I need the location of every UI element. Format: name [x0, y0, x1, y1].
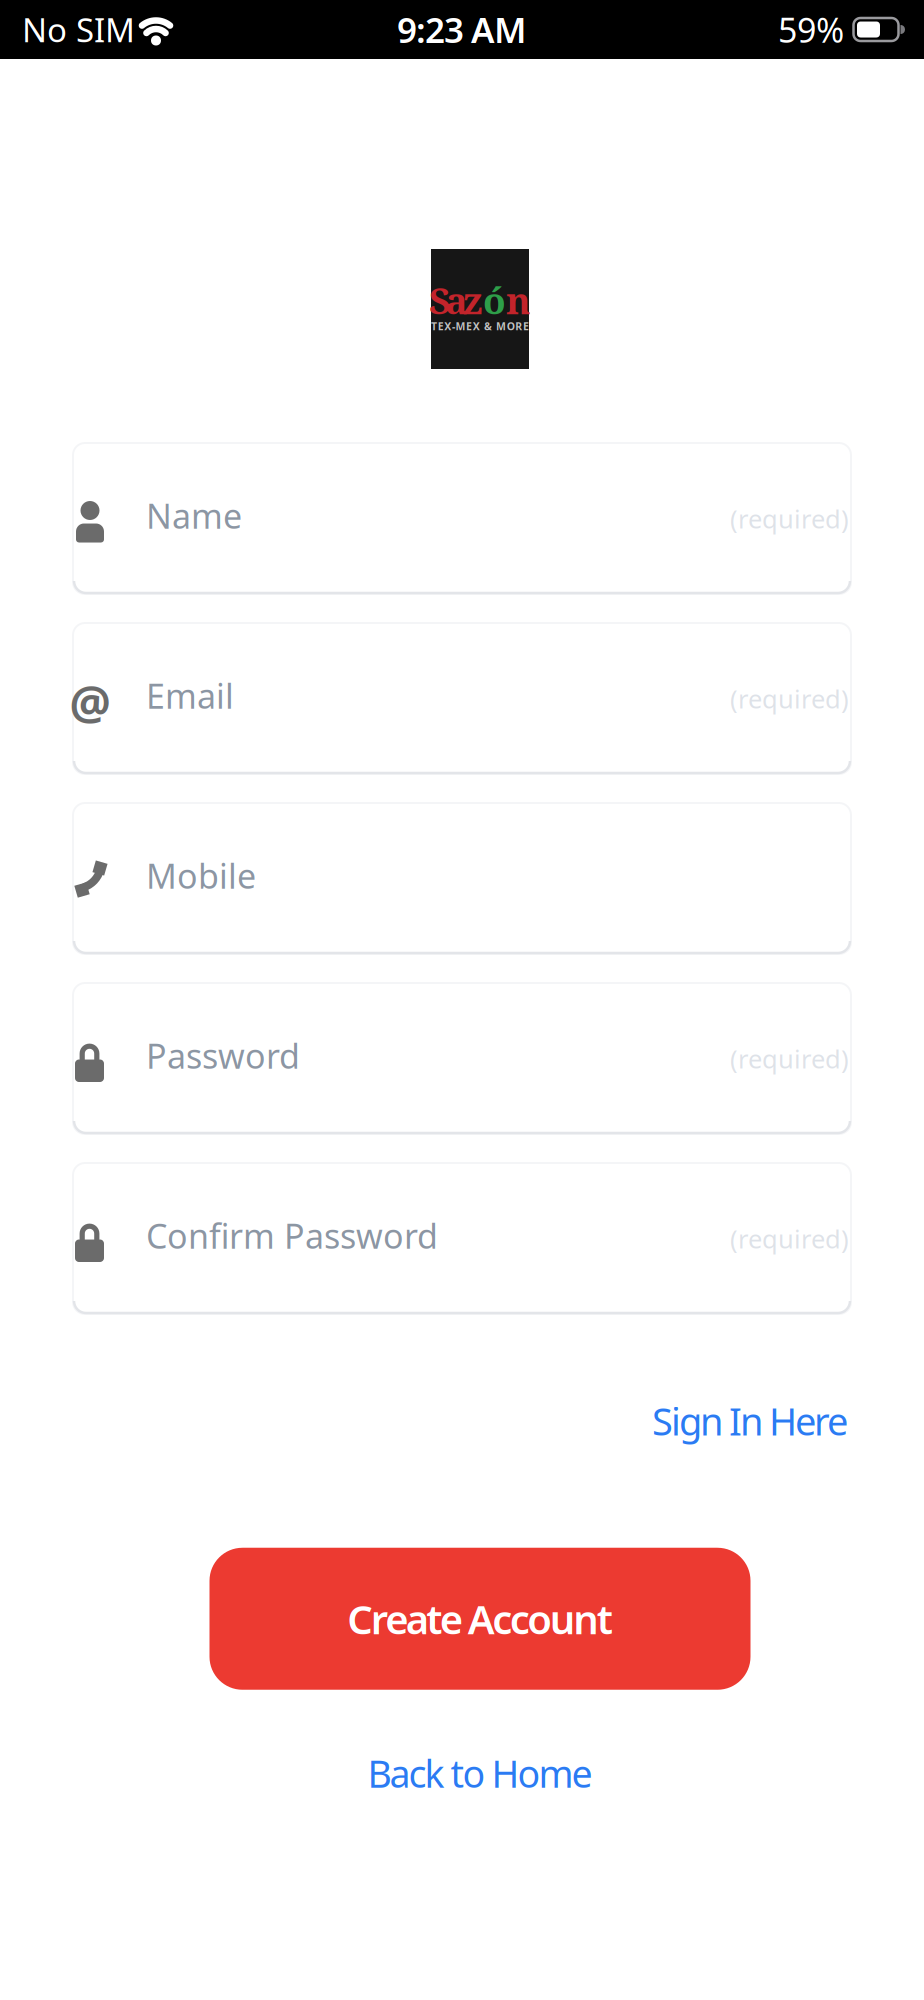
staticText: No SIM: [22, 7, 135, 52]
staticText: (required): [730, 1221, 849, 1256]
button[interactable]: @: [73, 623, 851, 774]
staticText: (required): [730, 1041, 849, 1076]
staticText: 59%: [778, 6, 844, 53]
button[interactable]: Create Account: [209, 1548, 750, 1690]
button[interactable]: Confirm Password: [73, 1163, 851, 1314]
staticText: ó: [483, 275, 506, 325]
staticText: Password: [146, 1032, 300, 1079]
button[interactable]: Mobile: [73, 803, 851, 954]
staticText: (required): [730, 501, 849, 536]
staticText: Sign In Here: [652, 1395, 848, 1447]
staticText: Confirm Password: [146, 1212, 438, 1259]
button[interactable]: Back to Home: [367, 1748, 592, 1799]
staticText: @: [69, 670, 110, 733]
staticText: Saz: [429, 275, 483, 325]
button[interactable]: Password: [73, 983, 851, 1134]
staticText: Name: [146, 492, 242, 539]
staticText: Email: [146, 672, 234, 719]
staticText: 9:23 AM: [397, 6, 527, 53]
staticText: Create Account: [347, 1591, 613, 1646]
staticText: Back to Home: [367, 1748, 592, 1799]
button[interactable]: Sign In Here: [652, 1395, 848, 1447]
staticText: Mobile: [146, 852, 256, 899]
button[interactable]: Name: [73, 443, 851, 594]
staticText: TEX-MEX & MORE: [431, 319, 529, 333]
staticText: n: [506, 275, 531, 325]
staticText: (required): [730, 681, 849, 716]
